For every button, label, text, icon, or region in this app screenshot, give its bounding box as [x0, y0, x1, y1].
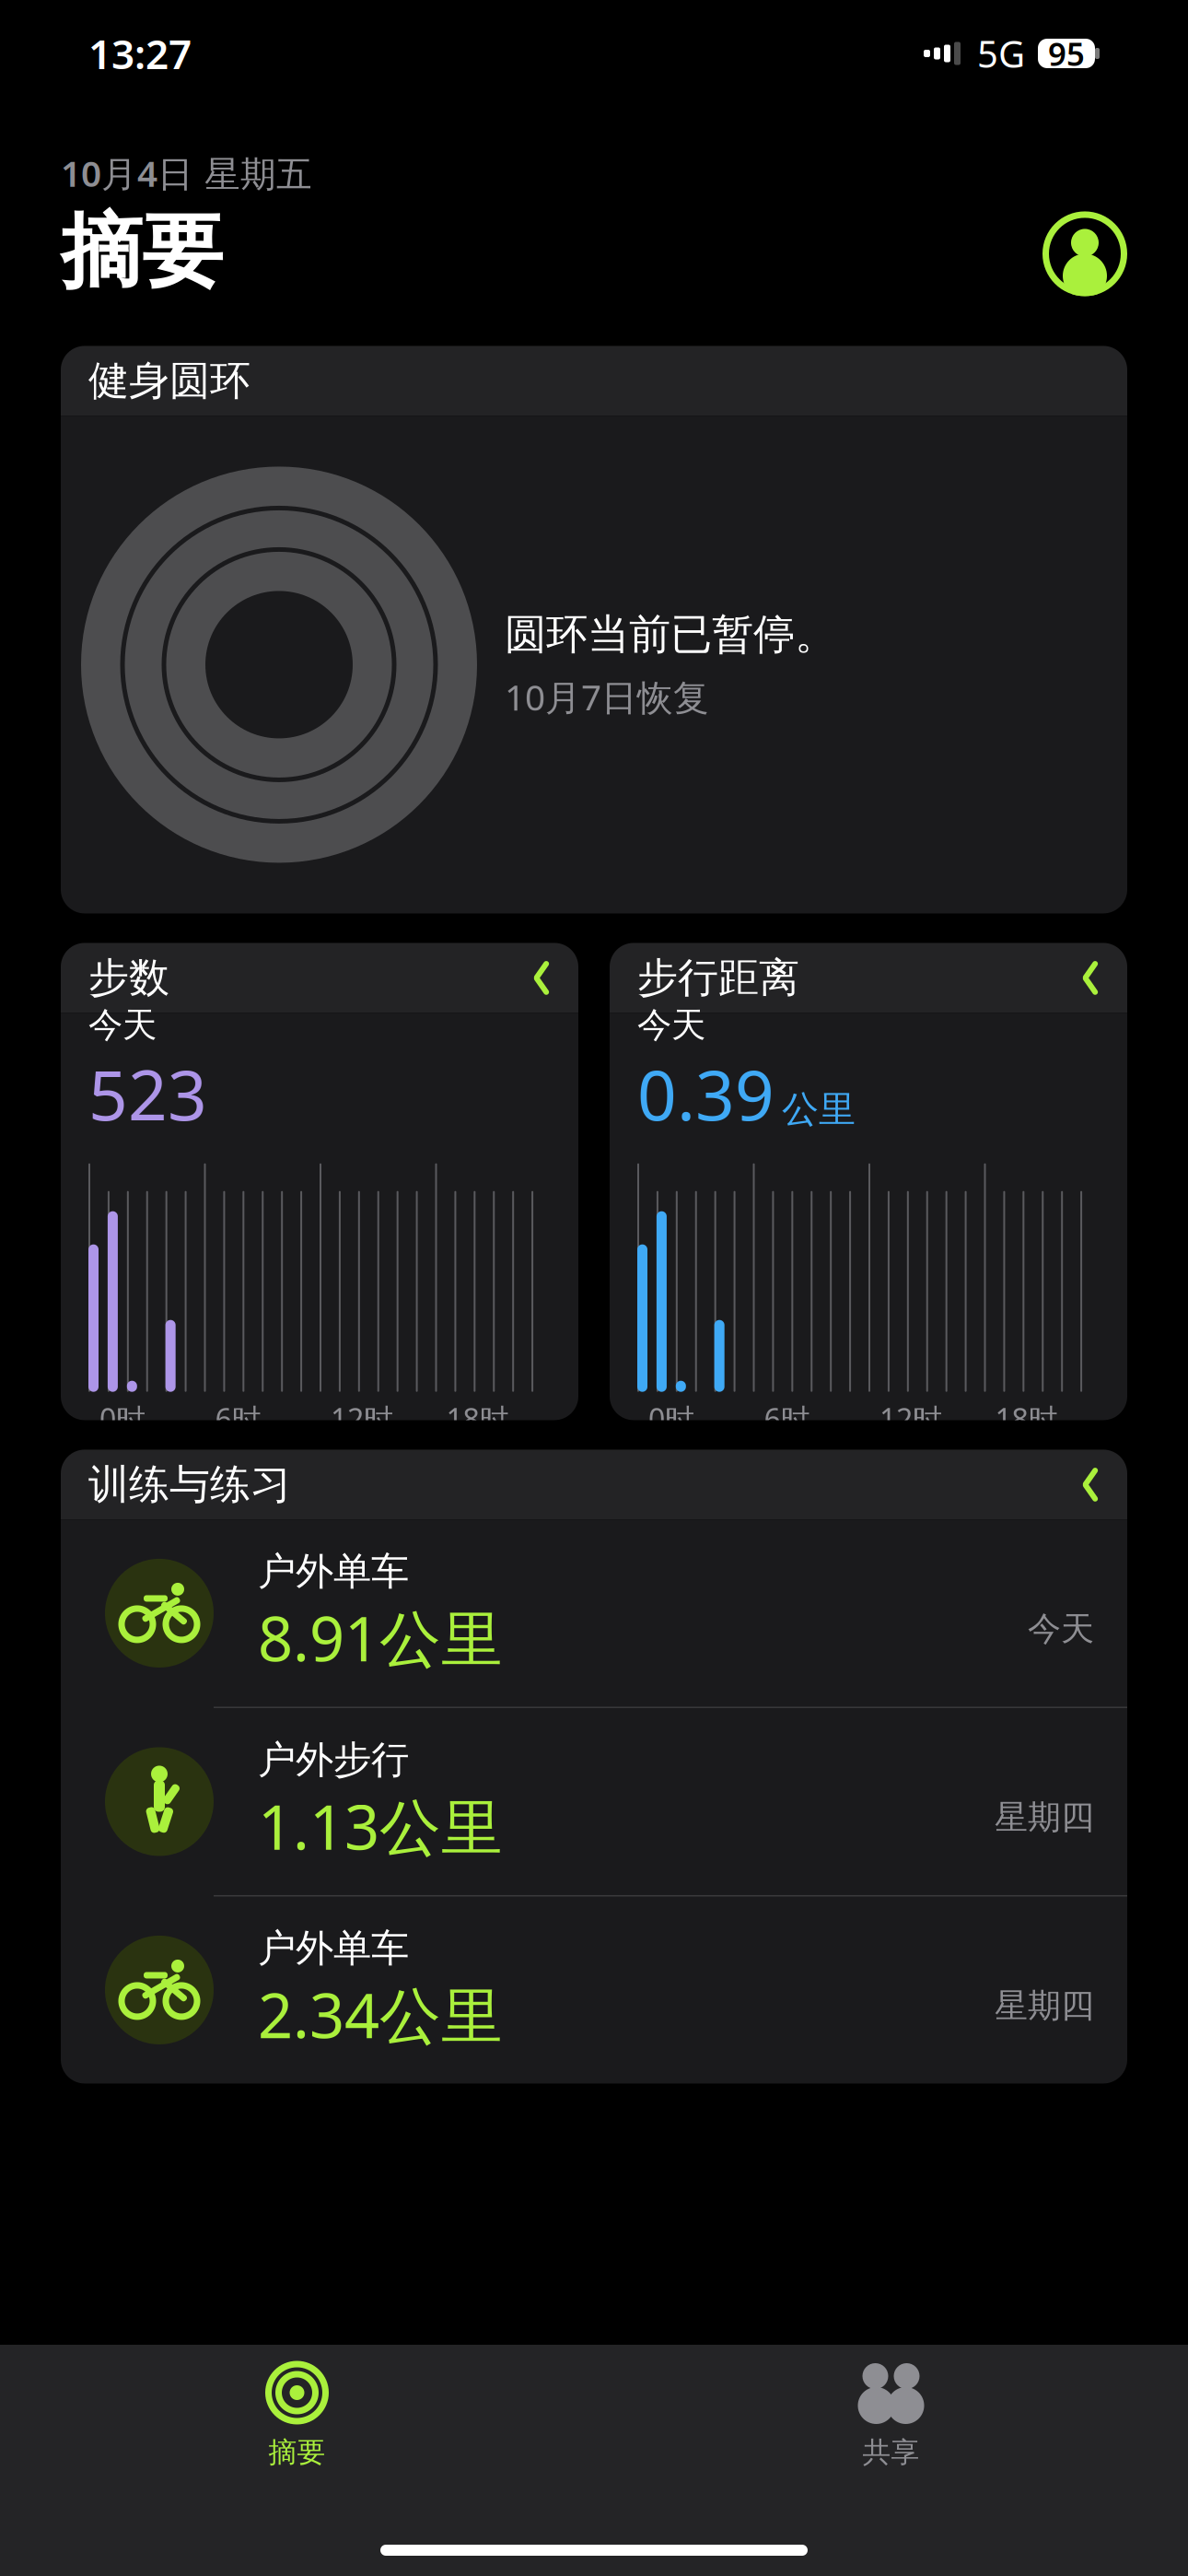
button[interactable]: 个人资料 [1042, 211, 1127, 296]
staticText: 星期四 [995, 1797, 1094, 1838]
staticText: 6时 [764, 1399, 810, 1438]
button[interactable]: 步数 [61, 943, 578, 1420]
staticText: 0时 [648, 1399, 694, 1438]
button[interactable]: 步行距离 [610, 943, 1127, 1420]
staticText: 523 [88, 1048, 207, 1139]
staticText: 18时 [446, 1399, 509, 1438]
button[interactable]: 户外步行 [61, 1707, 1127, 1895]
staticText: 户外单车 [258, 1548, 409, 1595]
staticText: 健身圆环 [88, 356, 250, 406]
staticText: 户外步行 [258, 1736, 409, 1783]
staticText: 8.91公里 [258, 1597, 503, 1678]
button[interactable]: 共享 [594, 2345, 1188, 2470]
staticText: 步数 [88, 953, 169, 1003]
staticText: 1.13公里 [258, 1785, 503, 1867]
staticText: 12时 [331, 1399, 393, 1438]
staticText: 13:27 [88, 27, 192, 80]
staticText: 共享 [862, 2435, 920, 2470]
staticText: 摘要 [268, 2435, 326, 2470]
staticText: 0时 [99, 1399, 146, 1438]
button[interactable]: 摘要 [0, 2345, 594, 2470]
staticText: 圆环当前已暂停。 [505, 609, 836, 660]
staticText: 今天 [88, 1004, 157, 1046]
staticText: 10月4日 星期五 [61, 149, 312, 197]
staticText: 公里 [782, 1087, 856, 1132]
button[interactable]: 训练与练习 [61, 1450, 1127, 1520]
staticText: 95 [1048, 32, 1085, 75]
staticText: 今天 [1028, 1608, 1094, 1649]
staticText: 2.34公里 [258, 1974, 503, 2055]
staticText: 12时 [879, 1399, 942, 1438]
staticText: 训练与练习 [88, 1460, 291, 1509]
staticText: 6时 [215, 1399, 261, 1438]
button[interactable]: 健身圆环 [61, 346, 1127, 913]
staticText: 户外单车 [258, 1925, 409, 1972]
button[interactable]: 户外单车 [61, 1520, 1127, 1707]
staticText: 步行距离 [637, 953, 799, 1003]
button[interactable]: 户外单车 [61, 1895, 1127, 2083]
staticText: 今天 [637, 1004, 705, 1046]
staticText: 10月7日恢复 [505, 673, 709, 720]
staticText: 0.39 [637, 1048, 775, 1139]
staticText: 星期四 [995, 1985, 1094, 2026]
staticText: 5G [977, 29, 1025, 78]
staticText: 18时 [995, 1399, 1058, 1438]
staticText: 摘要 [61, 202, 223, 302]
